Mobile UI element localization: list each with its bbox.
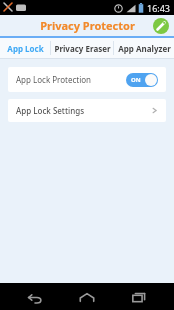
staticText: Privacy Protector bbox=[40, 18, 135, 33]
staticText: App Lock bbox=[7, 43, 44, 54]
button[interactable]: App Lock bbox=[0, 38, 50, 58]
button[interactable]: Tools bbox=[153, 18, 169, 34]
staticText: 16:43 bbox=[147, 2, 171, 14]
staticText: App Lock Protection bbox=[16, 74, 126, 85]
button[interactable]: Privacy Eraser bbox=[51, 38, 113, 58]
button[interactable]: Home bbox=[70, 286, 104, 308]
button[interactable]: App Analyzer bbox=[114, 38, 174, 58]
staticText: Privacy Eraser bbox=[54, 43, 111, 54]
staticText: App Analyzer bbox=[118, 43, 171, 54]
button[interactable]: Recents bbox=[122, 286, 156, 308]
button[interactable]: App Lock Protection bbox=[8, 67, 166, 92]
button[interactable]: App Lock Protection toggle, on bbox=[126, 73, 158, 87]
staticText: App Lock Settings bbox=[16, 105, 151, 116]
staticText: ON bbox=[131, 76, 141, 84]
button[interactable]: App Lock Settings bbox=[8, 99, 166, 122]
button[interactable]: Back bbox=[18, 286, 52, 308]
